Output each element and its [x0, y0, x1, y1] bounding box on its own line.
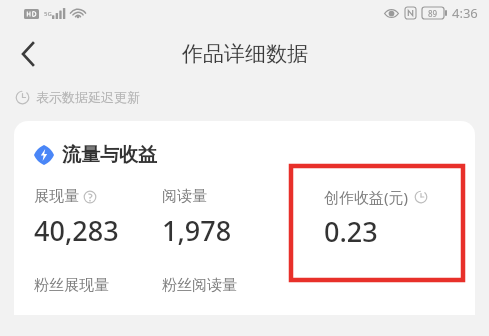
staticText: 流量与收益 [62, 143, 157, 167]
staticText: 作品详细数据 [182, 41, 308, 67]
staticText: 89 [428, 8, 438, 19]
button[interactable]: 创作收益(元) [310, 187, 475, 250]
staticText: 阅读量 [162, 187, 207, 206]
staticText: 创作收益(元) [324, 187, 409, 207]
button[interactable]: 阅读量 [162, 187, 310, 249]
staticText: 1,978 [162, 212, 232, 249]
button[interactable]: 展现量 [14, 187, 162, 249]
staticText: 4:36 [452, 4, 478, 22]
staticText: 粉丝阅读量 [162, 276, 237, 295]
staticText: 表示数据延迟更新 [36, 89, 140, 105]
staticText: 5G [44, 10, 52, 18]
staticText: 粉丝展现量 [34, 276, 109, 295]
button[interactable]: 返回 [6, 32, 50, 76]
staticText: 0.23 [324, 213, 378, 250]
staticText: 40,283 [34, 212, 119, 249]
staticText: 展现量 [34, 187, 79, 206]
